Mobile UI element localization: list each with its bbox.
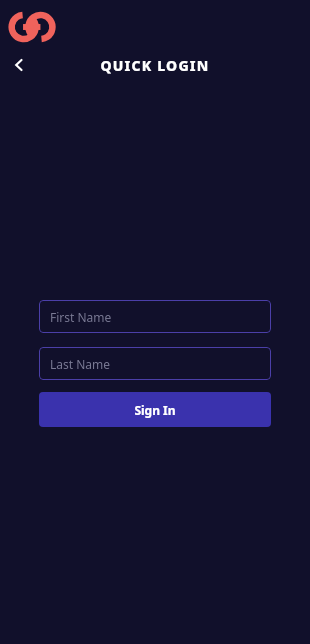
other: GO logo	[9, 12, 57, 42]
staticText: First Name	[50, 309, 112, 325]
staticText: QUICK LOGIN	[100, 56, 210, 75]
staticText: Sign In	[134, 402, 176, 418]
staticText: Last Name	[50, 356, 111, 372]
button[interactable]: Last Name	[39, 347, 271, 380]
button[interactable]: First Name	[39, 300, 271, 333]
button[interactable]: Sign In	[39, 392, 271, 427]
button[interactable]: Back	[4, 50, 34, 80]
